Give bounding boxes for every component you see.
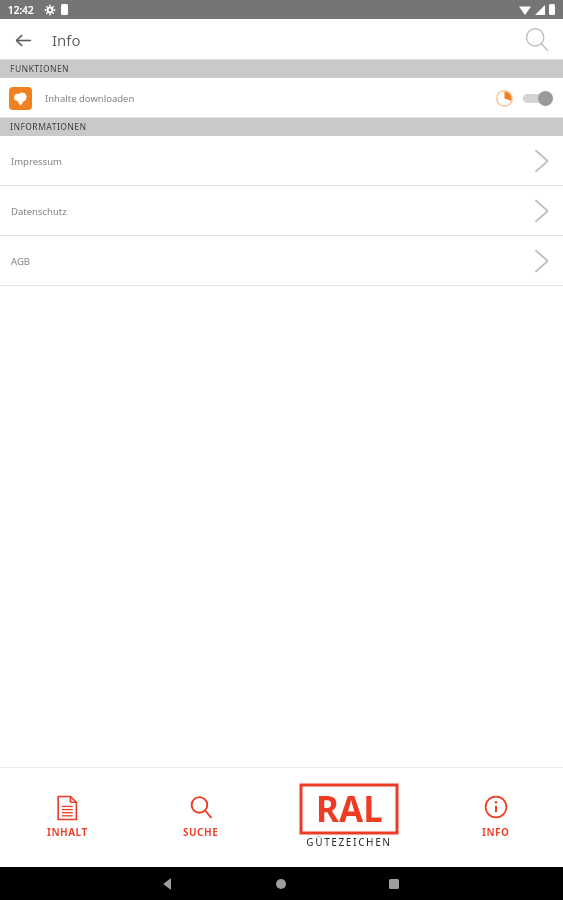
staticText: RAL (316, 785, 383, 833)
button[interactable]: RAL Gütezeichen (301, 785, 397, 849)
button[interactable]: Toggle downloads (523, 89, 553, 107)
button[interactable]: AGB (0, 236, 563, 286)
staticText: GÜTEZEICHEN (306, 835, 392, 849)
button[interactable]: Datenschutz (0, 186, 563, 236)
button[interactable]: Inhalte downloaden (0, 78, 563, 118)
button[interactable]: Recents (337, 867, 450, 900)
button[interactable]: Back (6, 23, 40, 57)
staticText: INHALT (47, 825, 88, 839)
button[interactable]: INFO (429, 767, 563, 867)
staticText: AGB (11, 255, 30, 268)
button[interactable]: Search (517, 20, 557, 60)
staticText: FUNKTIONEN (10, 63, 70, 75)
button[interactable]: Impressum (0, 136, 563, 186)
staticText: Impressum (11, 155, 62, 168)
button[interactable]: Back (112, 867, 224, 900)
staticText: Datenschutz (11, 205, 67, 218)
staticText: SUCHE (183, 825, 219, 839)
staticText: Inhalte downloaden (45, 92, 135, 105)
button[interactable]: SUCHE (134, 767, 268, 867)
staticText: Info (52, 30, 81, 50)
staticText: INFORMATIONEN (10, 121, 87, 133)
button[interactable]: Home (224, 867, 337, 900)
staticText: INFO (482, 825, 510, 839)
staticText: 12:42 (8, 3, 34, 17)
button[interactable]: INHALT (0, 767, 134, 867)
